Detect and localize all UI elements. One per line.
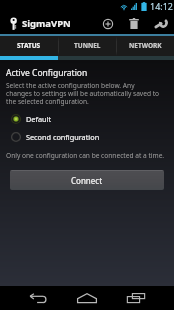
- staticText: Select the active configuration below. A…: [6, 81, 162, 106]
- staticText: SigmaVPN: [22, 17, 71, 30]
- staticText: 14:12: [150, 0, 174, 12]
- staticText: Default: [26, 114, 52, 124]
- staticText: NETWORK: [129, 41, 162, 50]
- staticText: Only one configuration can be connected …: [6, 151, 165, 160]
- button[interactable]: Add configuration: [95, 13, 121, 34]
- button[interactable]: Home: [74, 286, 100, 310]
- button[interactable]: STATUS: [0, 34, 58, 60]
- staticText: STATUS: [17, 41, 41, 50]
- button[interactable]: TUNNEL: [58, 34, 116, 60]
- button[interactable]: Delete: [121, 13, 147, 34]
- button[interactable]: Default: [0, 110, 174, 128]
- button[interactable]: Recent apps: [124, 286, 148, 310]
- staticText: TUNNEL: [74, 41, 101, 50]
- button[interactable]: NETWORK: [116, 34, 174, 60]
- button[interactable]: Back: [26, 286, 50, 310]
- button[interactable]: Second configuration: [0, 128, 174, 146]
- staticText: Active Configuration: [6, 67, 88, 79]
- staticText: Connect: [71, 175, 103, 186]
- staticText: Second configuration: [26, 132, 100, 142]
- button[interactable]: Settings: [147, 13, 173, 34]
- button[interactable]: Connect: [10, 170, 164, 190]
